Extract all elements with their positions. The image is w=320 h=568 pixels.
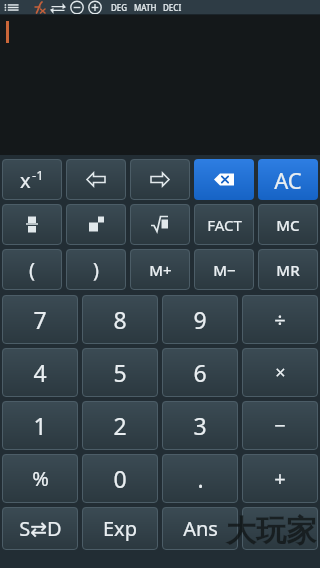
button[interactable]: Backspace bbox=[194, 159, 254, 200]
button[interactable]: All clear bbox=[258, 159, 318, 200]
button[interactable]: ÷ bbox=[242, 295, 318, 344]
button[interactable]: × bbox=[242, 348, 318, 397]
button[interactable]: ( bbox=[2, 249, 62, 290]
staticText: FACT bbox=[207, 215, 242, 235]
button[interactable]: 4 bbox=[2, 348, 78, 397]
staticText: MATH bbox=[134, 2, 157, 13]
staticText: S⇄D bbox=[19, 515, 62, 542]
staticText: Exp bbox=[103, 515, 137, 542]
staticText: + bbox=[274, 465, 286, 492]
button[interactable]: 8 bbox=[82, 295, 158, 344]
staticText: 2 bbox=[113, 410, 127, 441]
button[interactable]: M− bbox=[194, 249, 254, 290]
button[interactable]: MATH bbox=[131, 0, 160, 15]
button[interactable]: Fraction bbox=[2, 204, 62, 245]
button[interactable]: ) bbox=[66, 249, 126, 290]
button[interactable]: Exp bbox=[82, 507, 158, 550]
staticText: 8 bbox=[113, 304, 127, 335]
button[interactable]: 2 bbox=[82, 401, 158, 450]
button[interactable]: Square root bbox=[130, 204, 190, 245]
button[interactable]: Move right bbox=[130, 159, 190, 200]
staticText: 0 bbox=[113, 463, 127, 494]
button[interactable]: 1 bbox=[2, 401, 78, 450]
staticText: MC bbox=[276, 215, 300, 235]
button[interactable]: Menu bbox=[3, 0, 23, 15]
staticText: 大玩家 bbox=[226, 512, 316, 550]
button[interactable] bbox=[0, 15, 320, 155]
staticText: . bbox=[197, 463, 204, 494]
staticText: AC bbox=[274, 165, 302, 195]
staticText: % bbox=[32, 465, 49, 492]
button[interactable]: Inverse bbox=[2, 159, 62, 200]
staticText: Ans bbox=[183, 515, 218, 542]
button[interactable]: 9 bbox=[162, 295, 238, 344]
button[interactable]: Swap bbox=[49, 0, 67, 15]
staticText: 7 bbox=[33, 304, 47, 335]
button[interactable]: DEG bbox=[108, 0, 131, 15]
staticText: 9 bbox=[193, 304, 207, 335]
staticText: DECI bbox=[163, 2, 182, 13]
button[interactable]: + bbox=[242, 454, 318, 503]
button[interactable]: 7 bbox=[2, 295, 78, 344]
button[interactable]: DECI bbox=[160, 0, 185, 15]
button[interactable]: FACT bbox=[194, 204, 254, 245]
button[interactable]: % bbox=[2, 454, 78, 503]
staticText: ( bbox=[29, 256, 35, 283]
button[interactable]: Zoom out bbox=[68, 0, 86, 15]
staticText: − bbox=[274, 412, 286, 439]
staticText: × bbox=[275, 360, 286, 385]
staticText: 5 bbox=[113, 357, 127, 388]
button[interactable]: 0 bbox=[82, 454, 158, 503]
button[interactable] bbox=[242, 507, 318, 550]
staticText: 6 bbox=[193, 357, 207, 388]
button[interactable]: MR bbox=[258, 249, 318, 290]
staticText: M− bbox=[213, 260, 236, 280]
button[interactable]: Move left bbox=[66, 159, 126, 200]
staticText: MR bbox=[276, 260, 300, 280]
button[interactable]: S⇄D bbox=[2, 507, 78, 550]
button[interactable]: Functions bbox=[29, 0, 47, 15]
button[interactable]: Ans bbox=[162, 507, 238, 550]
button[interactable]: − bbox=[242, 401, 318, 450]
button[interactable]: 5 bbox=[82, 348, 158, 397]
staticText: M+ bbox=[149, 260, 172, 280]
button[interactable]: M+ bbox=[130, 249, 190, 290]
staticText: x bbox=[20, 167, 31, 194]
staticText: ÷ bbox=[274, 306, 286, 333]
button[interactable]: Power bbox=[66, 204, 126, 245]
button[interactable]: . bbox=[162, 454, 238, 503]
staticText: ) bbox=[93, 256, 99, 283]
button[interactable]: MC bbox=[258, 204, 318, 245]
button[interactable]: 6 bbox=[162, 348, 238, 397]
staticText: 1 bbox=[33, 410, 47, 441]
staticText: 4 bbox=[33, 357, 47, 388]
staticText: DEG bbox=[111, 2, 128, 13]
staticText: 3 bbox=[193, 410, 207, 441]
button[interactable]: Zoom in bbox=[86, 0, 104, 15]
staticText: -1 bbox=[32, 166, 44, 184]
button[interactable]: 3 bbox=[162, 401, 238, 450]
